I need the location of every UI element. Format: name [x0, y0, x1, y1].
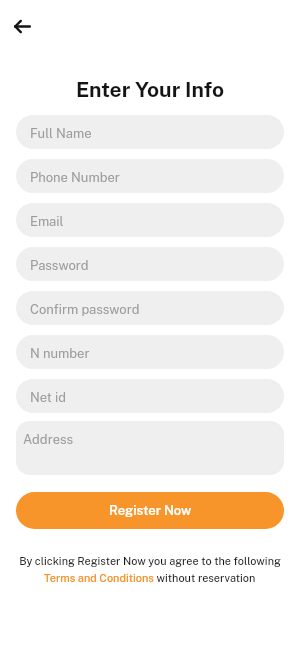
staticText: Confirm password	[30, 302, 140, 317]
staticText: Password	[30, 258, 89, 273]
staticText: Full Name	[30, 126, 92, 141]
button[interactable]: Phone Number	[16, 159, 284, 193]
staticText: Address	[23, 432, 74, 447]
button[interactable]: Back	[6, 11, 38, 42]
staticText: Email	[30, 214, 64, 229]
staticText: Net id	[30, 390, 66, 405]
button[interactable]: N number	[16, 335, 284, 369]
button[interactable]: Email	[16, 203, 284, 237]
staticText: N number	[30, 346, 90, 361]
staticText: without reservation	[154, 572, 256, 585]
button[interactable]: Full Name	[16, 115, 284, 149]
button[interactable]: Terms and Conditions	[44, 572, 154, 585]
button[interactable]: Password	[16, 247, 284, 281]
button[interactable]: Net id	[16, 379, 284, 413]
staticText: Phone Number	[30, 170, 120, 185]
staticText: Enter Your Info	[0, 77, 300, 102]
button[interactable]: Address	[16, 421, 284, 475]
button[interactable]: Register Now	[16, 492, 284, 529]
staticText: Register Now	[109, 503, 192, 518]
staticText: By clicking Register Now you agree to th…	[0, 555, 300, 568]
button[interactable]: Confirm password	[16, 291, 284, 325]
